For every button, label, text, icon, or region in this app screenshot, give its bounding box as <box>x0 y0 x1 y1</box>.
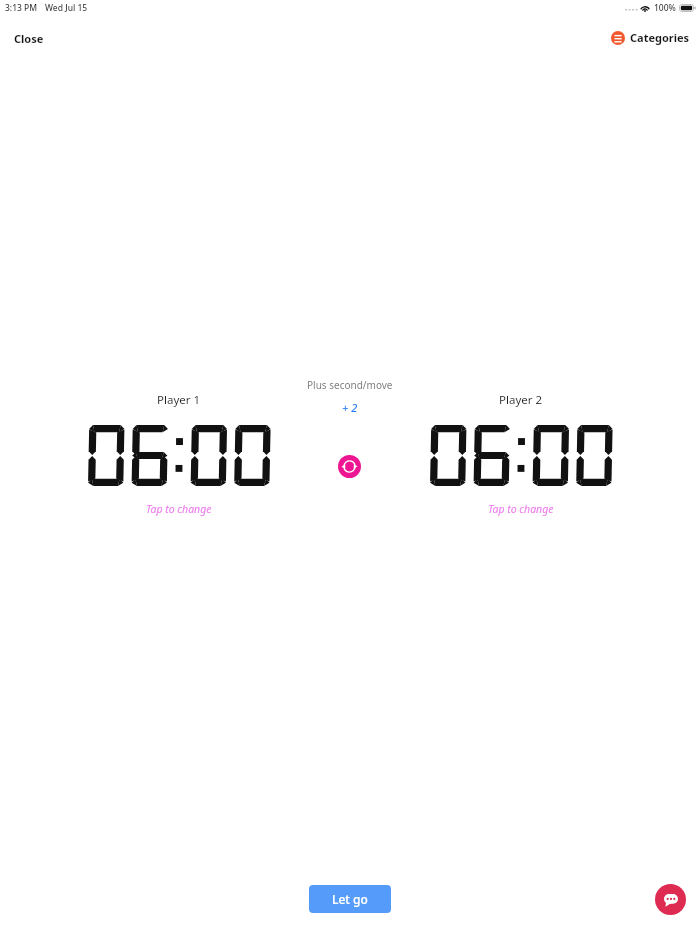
button[interactable]: Player 1 <box>79 392 279 516</box>
staticText: Player 1 <box>157 392 201 408</box>
button[interactable]: Close <box>6 26 52 51</box>
staticText: Wed Jul 15 <box>45 2 88 14</box>
button[interactable]: Swap players <box>338 455 361 478</box>
button[interactable]: Categories <box>607 26 694 49</box>
staticText: Categories <box>630 30 690 45</box>
button[interactable]: Let go <box>309 885 391 913</box>
staticText: 100% <box>654 2 676 14</box>
staticText: Let go <box>332 891 368 907</box>
button[interactable]: Player 2 <box>421 392 621 516</box>
staticText: Tap to change <box>488 502 554 516</box>
button[interactable]: Chat <box>655 884 686 915</box>
staticText: Close <box>14 31 44 46</box>
staticText: Tap to change <box>146 502 212 516</box>
staticText: + 2 <box>342 400 358 415</box>
button[interactable]: + 2 <box>332 398 368 417</box>
staticText: Plus second/move <box>307 378 393 392</box>
staticText: Player 2 <box>499 392 543 408</box>
staticText: 3:13 PM <box>5 2 38 14</box>
